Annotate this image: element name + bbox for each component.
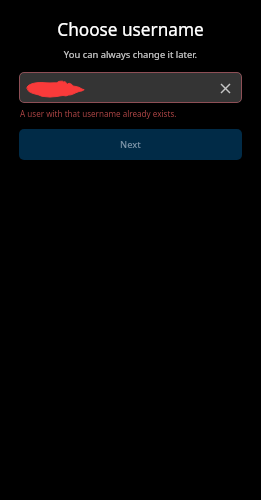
button[interactable]: Next xyxy=(19,129,242,160)
staticText: You can always change it later. xyxy=(0,48,261,61)
button[interactable]: Clear text xyxy=(19,72,242,103)
staticText: Choose username xyxy=(0,18,261,41)
button[interactable]: Clear text xyxy=(213,76,237,100)
staticText: Next xyxy=(120,138,141,151)
staticText: A user with that username already exists… xyxy=(20,108,177,119)
